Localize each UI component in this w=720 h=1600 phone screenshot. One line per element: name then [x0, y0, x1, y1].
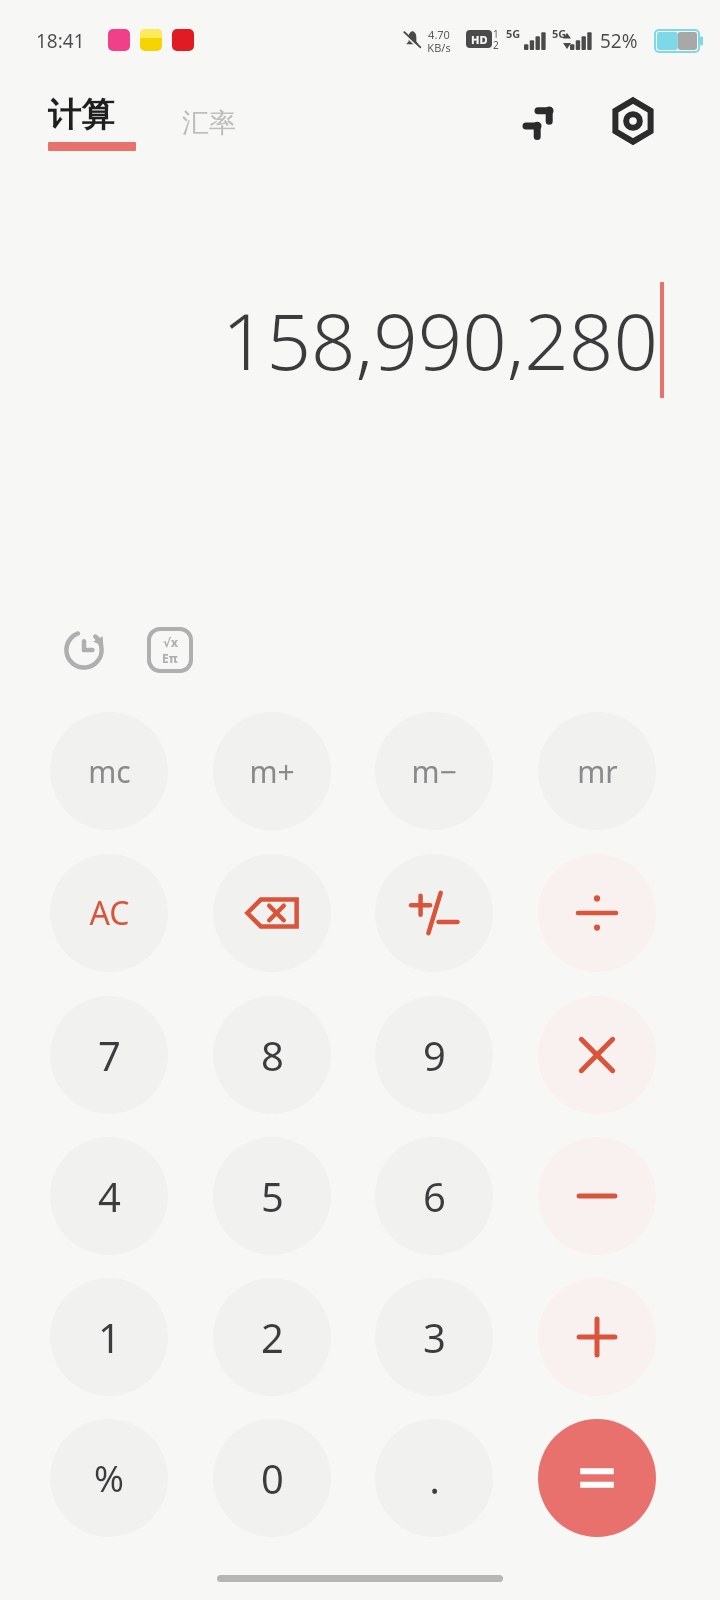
staticText: 158,990,280 — [222, 287, 658, 393]
button[interactable]: 2 — [213, 1278, 331, 1396]
button[interactable]: % — [50, 1419, 168, 1537]
staticText: 2 — [261, 1310, 284, 1364]
button[interactable]: mr — [538, 712, 656, 830]
staticText: 5G — [552, 26, 567, 41]
staticText: 5G — [506, 26, 521, 41]
staticText: 3 — [423, 1310, 446, 1364]
staticText: . — [429, 1451, 440, 1505]
staticText: Eπ — [162, 650, 178, 666]
button[interactable]: 汇率 — [176, 102, 242, 144]
staticText: 1 — [493, 27, 499, 41]
staticText: KB/s — [427, 40, 451, 55]
staticText: √x — [163, 634, 178, 650]
button[interactable]: 6 — [375, 1137, 493, 1255]
staticText: HD — [471, 32, 488, 47]
button[interactable]: m+ — [213, 712, 331, 830]
button[interactable]: 9 — [375, 996, 493, 1114]
button[interactable]: m− — [375, 712, 493, 830]
staticText: 4 — [98, 1169, 121, 1223]
button[interactable]: Equals — [538, 1419, 656, 1537]
staticText: 6 — [423, 1169, 446, 1223]
staticText: 4.70 — [428, 27, 450, 42]
staticText: m− — [411, 751, 457, 792]
button[interactable]: mc — [50, 712, 168, 830]
button[interactable]: AC — [50, 854, 168, 972]
button[interactable]: Scientific — [136, 616, 204, 684]
staticText: 5 — [261, 1169, 284, 1223]
button[interactable]: 计算 — [44, 94, 140, 151]
staticText: 汇率 — [182, 106, 236, 140]
staticText: 计算 — [48, 94, 114, 136]
button[interactable]: 1 — [50, 1278, 168, 1396]
button[interactable]: 8 — [213, 996, 331, 1114]
staticText: mr — [577, 751, 618, 792]
staticText: 2 — [493, 38, 499, 52]
button[interactable]: . — [375, 1419, 493, 1537]
staticText: % — [94, 1454, 124, 1503]
staticText: 52% — [600, 28, 638, 54]
button[interactable]: 4 — [50, 1137, 168, 1255]
button[interactable]: Divide — [538, 854, 656, 972]
button[interactable]: 5 — [213, 1137, 331, 1255]
staticText: m+ — [249, 751, 295, 792]
button[interactable]: Plus minus — [375, 854, 493, 972]
button[interactable]: Plus — [538, 1278, 656, 1396]
button[interactable]: Minus — [538, 1137, 656, 1255]
button[interactable]: Backspace — [213, 854, 331, 972]
staticText: mc — [88, 751, 131, 792]
staticText: 8 — [261, 1028, 284, 1082]
button[interactable]: 7 — [50, 996, 168, 1114]
button[interactable]: Collapse — [508, 92, 568, 152]
button[interactable]: 0 — [213, 1419, 331, 1537]
button[interactable]: Settings — [602, 90, 664, 152]
button[interactable]: 3 — [375, 1278, 493, 1396]
staticText: 9 — [423, 1028, 446, 1082]
staticText: 18:41 — [36, 28, 85, 54]
staticText: 1 — [98, 1310, 121, 1364]
staticText: 0 — [261, 1451, 284, 1505]
staticText: AC — [89, 891, 130, 935]
button[interactable]: Multiply — [538, 996, 656, 1114]
staticText: 7 — [98, 1028, 121, 1082]
button[interactable]: History — [50, 616, 118, 684]
